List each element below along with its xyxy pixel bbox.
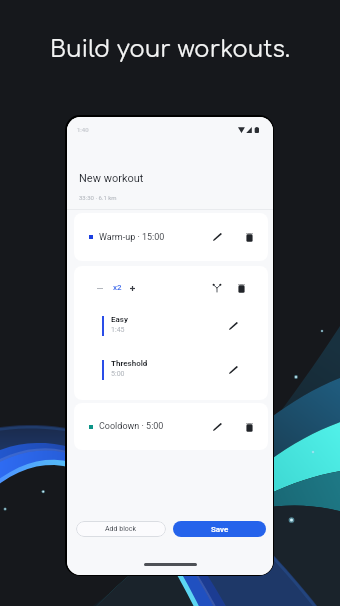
staticText: Build your workouts. [50, 37, 290, 63]
button[interactable]: Edit [209, 229, 225, 245]
staticText: New workout [79, 172, 144, 185]
button[interactable]: Decrease repeats [92, 280, 108, 296]
button[interactable]: Warm-up · 15:00 [74, 213, 268, 261]
button[interactable]: Threshold [74, 356, 268, 384]
button[interactable]: Delete [233, 280, 249, 296]
staticText: Cooldown · 5:00 [99, 421, 164, 432]
button[interactable]: Delete [241, 229, 257, 245]
button[interactable]: Edit [225, 318, 241, 334]
staticText: Save [211, 525, 229, 534]
staticText: 1:40 [77, 126, 89, 133]
button[interactable]: Delete [241, 419, 257, 435]
staticText: Add block [105, 525, 137, 533]
button[interactable]: Split block [209, 280, 225, 296]
button[interactable]: Add block [76, 521, 166, 537]
button[interactable]: Cooldown · 5:00 [74, 403, 268, 450]
staticText: Warm-up · 15:00 [99, 232, 165, 243]
button[interactable]: Easy [74, 312, 268, 340]
staticText: x2 [113, 283, 122, 292]
staticText: 1:45 [111, 326, 125, 334]
button[interactable]: Edit [225, 362, 241, 378]
staticText: Easy [111, 315, 128, 324]
staticText: 33:30 · 6.1 km [79, 194, 117, 201]
staticText: 5:00 [111, 370, 125, 378]
staticText: Threshold [111, 359, 148, 368]
button[interactable]: Save [173, 521, 266, 537]
button[interactable]: Edit [209, 419, 225, 435]
button[interactable]: Increase repeats [124, 280, 140, 296]
